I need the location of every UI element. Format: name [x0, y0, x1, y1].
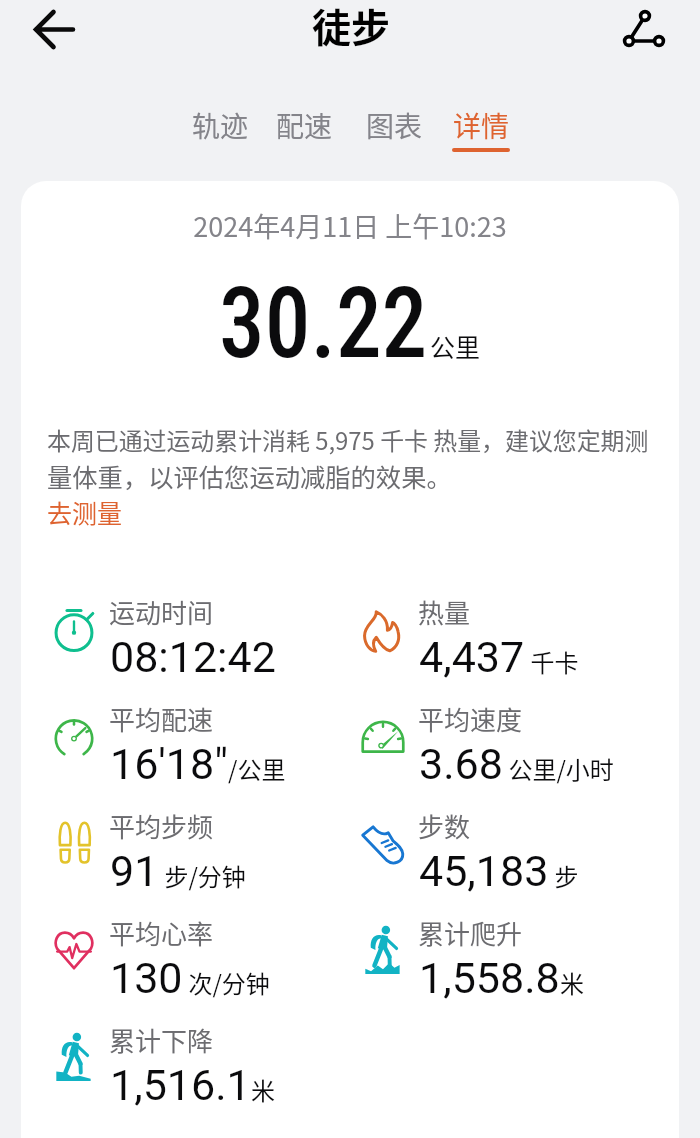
staticText: 本周已通过运动累计消耗 5,975 千卡 热量，建议您定期测 [47, 422, 649, 457]
staticText: 公里/小时 [503, 751, 614, 786]
staticText: 热量 [418, 593, 471, 631]
staticText: 千卡 [525, 644, 579, 679]
button[interactable]: 热量 [330, 593, 637, 700]
button[interactable]: 累计下降 [21, 1021, 328, 1128]
staticText: 步/分钟 [159, 858, 246, 893]
staticText: 2024年4月11日 上午10:23 [21, 206, 679, 245]
staticText: 30.22 [219, 266, 428, 381]
button[interactable]: 步数 [330, 807, 637, 914]
staticText: 量体重，以评估您运动减脂的效果。 [47, 458, 452, 495]
staticText: 4,437 [419, 632, 525, 682]
staticText: 1,516.1 [110, 1060, 251, 1110]
staticText: 米 [560, 965, 584, 1000]
staticText: 平均心率 [109, 914, 214, 952]
staticText: 图表 [366, 105, 423, 146]
button[interactable]: 累计爬升 [330, 914, 637, 1021]
staticText: 3.68 [419, 739, 503, 789]
button[interactable]: 轨迹 [186, 101, 254, 156]
staticText: 运动时间 [109, 593, 214, 631]
staticText: 累计爬升 [418, 914, 523, 952]
staticText: 步 [549, 858, 579, 893]
button[interactable]: 平均心率 [21, 914, 328, 1021]
button[interactable]: 平均速度 [330, 700, 637, 807]
button[interactable]: 图表 [360, 101, 428, 156]
button[interactable]: 配速 [270, 101, 338, 156]
staticText: 公里 [430, 328, 481, 364]
button[interactable]: Share [616, 1, 674, 59]
staticText: 去测量 [47, 494, 123, 530]
staticText: 步数 [418, 807, 471, 845]
staticText: 累计下降 [109, 1021, 214, 1059]
staticText: 130 [110, 953, 183, 1003]
staticText: 详情 [453, 105, 510, 146]
staticText: 徒步 [312, 0, 391, 53]
button[interactable]: Back [26, 3, 82, 59]
button[interactable]: 平均配速 [21, 700, 328, 807]
button[interactable]: 平均步频 [21, 807, 328, 914]
staticText: 16'18" [110, 739, 228, 789]
staticText: 45,183 [419, 846, 549, 896]
staticText: 配速 [276, 105, 333, 146]
staticText: /公里 [228, 751, 286, 786]
button[interactable]: 详情 [447, 101, 515, 156]
staticText: 平均配速 [109, 700, 214, 738]
staticText: 91 [110, 846, 159, 896]
staticText: 08:12:42 [110, 632, 276, 682]
staticText: 平均步频 [109, 807, 214, 845]
staticText: 次/分钟 [183, 965, 270, 1000]
staticText: 平均速度 [418, 700, 523, 738]
staticText: 米 [251, 1072, 275, 1107]
staticText: 1,558.8 [419, 953, 560, 1003]
button[interactable]: 去测量 [47, 494, 123, 530]
staticText: 轨迹 [192, 105, 249, 146]
button[interactable]: 运动时间 [21, 593, 328, 700]
